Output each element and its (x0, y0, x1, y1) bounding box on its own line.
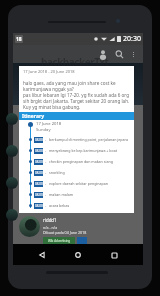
staticText: - (45, 170, 47, 175)
staticText: 08.00 (35, 204, 43, 208)
staticText: - (45, 192, 47, 197)
staticText: halo gaes, ada yang mau join share cost … (23, 80, 130, 110)
staticText: menyebrang ke kep.karimunjawa + boat (49, 148, 118, 153)
staticText: 08.00 (35, 138, 43, 142)
staticText: hackhacker.Txt (41, 55, 109, 69)
staticText: - (45, 148, 47, 153)
staticText: 08.00 (35, 160, 43, 164)
staticText: 17 June 2018 (36, 121, 62, 127)
staticText: checkin penginapan dan makan siang (49, 159, 113, 164)
staticText: - (45, 203, 47, 208)
staticText: Sunday (36, 127, 51, 133)
button[interactable]: Search (111, 46, 127, 62)
staticText: WA: Advertising (48, 239, 71, 243)
staticText: 17 June 2018 - 20 June 2018 (23, 69, 75, 74)
button[interactable]: Account (95, 46, 111, 62)
button[interactable]: More options (127, 48, 140, 61)
staticText: makan malam (49, 192, 74, 197)
button[interactable]: Recent apps (107, 248, 121, 262)
staticText: Itinerary (22, 113, 45, 120)
button[interactable]: WA: Advertising (43, 237, 75, 244)
staticText: 08.00 (35, 182, 43, 186)
staticText: explore daerah sekitar penginapan (49, 181, 108, 186)
staticText: 08.00 (35, 149, 43, 153)
button[interactable]: Back (35, 248, 49, 262)
button[interactable]: Home (71, 248, 85, 262)
staticText: - (45, 159, 47, 164)
staticText: acara bebas (49, 203, 70, 208)
staticText: 18 (16, 36, 22, 43)
staticText: n/a - n/a (43, 225, 58, 230)
staticText: - (45, 137, 47, 142)
staticText: berkumpul di meeting point, perjalanan j… (49, 137, 128, 142)
staticText: 20:30 (123, 34, 141, 44)
staticText: Dibuat pada 04 June 2018 (43, 230, 87, 235)
staticText: 08.00 (35, 171, 43, 175)
staticText: - (45, 181, 47, 186)
staticText: snorkling (49, 170, 65, 175)
staticText: 08.00 (35, 193, 43, 197)
staticText: riddd1 (43, 217, 57, 223)
